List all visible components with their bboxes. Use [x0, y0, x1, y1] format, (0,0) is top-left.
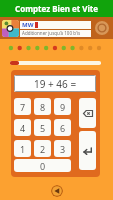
staticText: 2 — [40, 143, 46, 155]
button[interactable]: 9 — [54, 98, 71, 115]
staticText: 1 — [20, 143, 26, 155]
staticText: 8 — [40, 101, 46, 113]
staticText: Comptez Bien et Vite — [15, 3, 99, 14]
staticText: Additionner jusqu'à 100 b'is difficile — [22, 30, 91, 37]
staticText: 6 — [60, 122, 66, 134]
button[interactable]: 6 — [54, 119, 71, 136]
button[interactable]: 5 — [34, 119, 51, 136]
button[interactable]: Backspace — [79, 98, 96, 128]
staticText: MW — [22, 21, 34, 29]
staticText: 3 — [60, 143, 66, 155]
button[interactable]: 7 — [14, 98, 31, 115]
staticText: 4 — [20, 122, 26, 134]
button[interactable]: MW — [0, 17, 113, 39]
staticText: 7 — [20, 101, 26, 113]
button[interactable]: 3 — [54, 140, 71, 157]
staticText: 5 — [40, 122, 46, 134]
staticText: 9 — [60, 101, 66, 113]
button[interactable]: 2 — [34, 140, 51, 157]
button[interactable]: 0 — [14, 159, 71, 172]
button[interactable]: Enter — [79, 131, 96, 170]
button[interactable]: 4 — [14, 119, 31, 136]
button[interactable]: 1 — [14, 140, 31, 157]
staticText: 0 — [40, 160, 46, 172]
button[interactable]: Back — [51, 185, 63, 197]
staticText: 19 + 46 = — [34, 77, 77, 91]
button[interactable]: 8 — [34, 98, 51, 115]
